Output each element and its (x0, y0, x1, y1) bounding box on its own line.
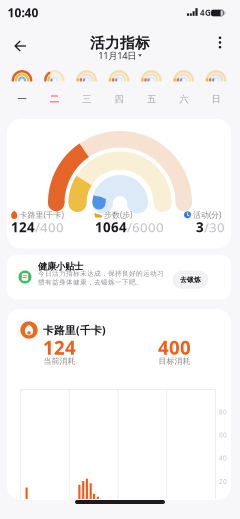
staticText: 日 (212, 93, 221, 105)
staticText: 二 (50, 93, 59, 105)
staticText: 惯有益身体健康，去锻炼一下吧。 (38, 278, 143, 286)
staticText: 124 (43, 335, 76, 360)
staticText: 活动(分) (193, 209, 221, 220)
button[interactable]: 去锻炼 (173, 271, 208, 289)
staticText: /30 (204, 218, 225, 236)
staticText: 20 (219, 477, 227, 486)
staticText: 四 (115, 93, 124, 105)
button[interactable]: 11月14日 (98, 49, 142, 62)
button[interactable]: More (219, 36, 221, 48)
button[interactable]: 五 (139, 67, 163, 105)
staticText: 三 (82, 93, 91, 105)
staticText: 健康小贴士 (38, 261, 83, 272)
staticText: 步数(步) (104, 209, 132, 220)
staticText: 当前消耗 (43, 356, 75, 366)
button[interactable]: 一 (10, 67, 34, 105)
button[interactable]: 日 (204, 67, 228, 105)
staticText: 1064 (95, 218, 127, 236)
staticText: 今日活力指标未达成，保持良好的运动习 (38, 269, 164, 278)
staticText: 60 (219, 431, 227, 439)
button[interactable]: 三 (75, 67, 99, 105)
staticText: 4G (200, 7, 211, 18)
staticText: 10:40 (7, 4, 38, 20)
staticText: 卡路里(千卡) (19, 209, 63, 220)
button[interactable]: Back (14, 41, 27, 51)
staticText: 卡路里(千卡) (43, 323, 106, 337)
button[interactable]: 二 (42, 67, 66, 105)
staticText: 400 (158, 335, 191, 360)
staticText: 40 (219, 454, 227, 462)
staticText: 活力指标 (90, 34, 150, 52)
staticText: 3 (196, 218, 204, 236)
button[interactable]: 六 (172, 67, 196, 105)
button[interactable]: 四 (107, 67, 131, 105)
staticText: 124 (11, 218, 35, 236)
staticText: 11月14日 (98, 49, 136, 62)
staticText: /6000 (127, 218, 164, 236)
staticText: 五 (147, 93, 156, 105)
staticText: 一 (17, 93, 26, 105)
staticText: 80 (219, 408, 227, 416)
staticText: 目标消耗 (158, 356, 190, 366)
staticText: /400 (35, 218, 64, 236)
staticText: 六 (179, 93, 188, 105)
staticText: 去锻炼 (180, 276, 201, 284)
